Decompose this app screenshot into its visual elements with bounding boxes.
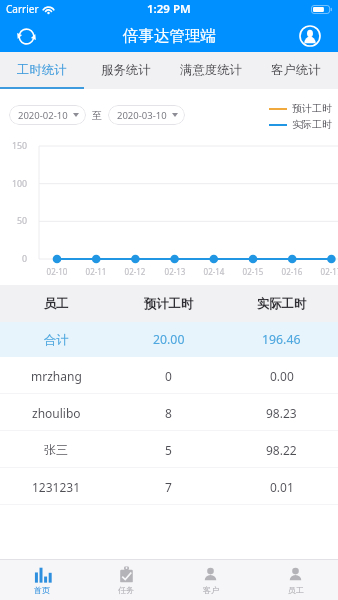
staticText: 02-12 bbox=[119, 266, 151, 277]
staticText: 满意度统计 bbox=[180, 62, 242, 78]
button[interactable]: 员工 bbox=[253, 560, 338, 600]
staticText: Carrier bbox=[6, 2, 39, 16]
button[interactable]: 客户 bbox=[168, 560, 253, 600]
button[interactable]: 合计 bbox=[0, 322, 338, 357]
staticText: 0 bbox=[0, 253, 27, 265]
staticText: 20.00 bbox=[153, 331, 185, 348]
staticText: 02-16 bbox=[276, 266, 308, 277]
staticText: 5 bbox=[165, 442, 172, 458]
button[interactable]: Refresh bbox=[13, 23, 39, 49]
button[interactable]: Account bbox=[298, 24, 322, 48]
staticText: 98.23 bbox=[266, 405, 297, 421]
button[interactable]: zhoulibo bbox=[0, 394, 338, 431]
button[interactable]: 满意度统计 bbox=[168, 52, 253, 87]
staticText: 实际工时 bbox=[292, 118, 332, 131]
button[interactable]: 张三 bbox=[0, 431, 338, 468]
staticText: 7 bbox=[165, 479, 172, 495]
staticText: 任务 bbox=[118, 585, 134, 595]
staticText: 02-10 bbox=[41, 266, 73, 277]
staticText: 张三 bbox=[44, 442, 68, 457]
staticText: 预计工时 bbox=[144, 296, 194, 311]
button[interactable]: mrzhang bbox=[0, 357, 338, 394]
staticText: 倍事达管理端 bbox=[123, 26, 216, 46]
staticText: 合计 bbox=[44, 332, 69, 347]
staticText: zhoulibo bbox=[32, 405, 81, 421]
staticText: 02-13 bbox=[159, 266, 191, 277]
button[interactable]: 任务 bbox=[84, 560, 168, 600]
button[interactable]: 1231231 bbox=[0, 468, 338, 505]
staticText: 客户统计 bbox=[271, 62, 321, 78]
staticText: 02-17 bbox=[315, 266, 338, 277]
staticText: mrzhang bbox=[31, 368, 82, 384]
staticText: 0.00 bbox=[270, 368, 294, 384]
staticText: 02-11 bbox=[80, 266, 112, 277]
staticText: 0 bbox=[165, 368, 172, 384]
staticText: 员工 bbox=[288, 585, 304, 595]
staticText: 客户 bbox=[203, 585, 219, 595]
staticText: 2020-03-10 bbox=[117, 109, 167, 122]
staticText: 02-15 bbox=[237, 266, 269, 277]
staticText: 服务统计 bbox=[101, 62, 151, 78]
staticText: 2020-02-10 bbox=[18, 109, 68, 122]
staticText: 首页 bbox=[34, 585, 50, 595]
staticText: 196.46 bbox=[262, 331, 301, 348]
staticText: 98.22 bbox=[266, 442, 297, 458]
staticText: 预计工时 bbox=[292, 102, 332, 115]
button[interactable]: 服务统计 bbox=[84, 52, 168, 87]
staticText: 50 bbox=[0, 215, 27, 227]
button[interactable]: 2020-03-10 bbox=[108, 105, 185, 125]
button[interactable]: 工时统计 bbox=[0, 52, 84, 87]
staticText: 工时统计 bbox=[17, 62, 67, 78]
button[interactable]: 2020-02-10 bbox=[9, 105, 86, 125]
button[interactable]: 首页 bbox=[0, 560, 84, 600]
staticText: 1231231 bbox=[32, 479, 81, 495]
button[interactable]: 客户统计 bbox=[253, 52, 338, 87]
staticText: 02-14 bbox=[198, 266, 230, 277]
staticText: 实际工时 bbox=[257, 296, 307, 311]
staticText: 150 bbox=[0, 140, 27, 152]
staticText: 至 bbox=[92, 109, 102, 122]
staticText: 0.01 bbox=[270, 479, 294, 495]
staticText: 100 bbox=[0, 178, 27, 190]
staticText: 1:29 PM bbox=[147, 1, 191, 17]
staticText: 员工 bbox=[44, 296, 69, 311]
staticText: 8 bbox=[165, 405, 172, 421]
